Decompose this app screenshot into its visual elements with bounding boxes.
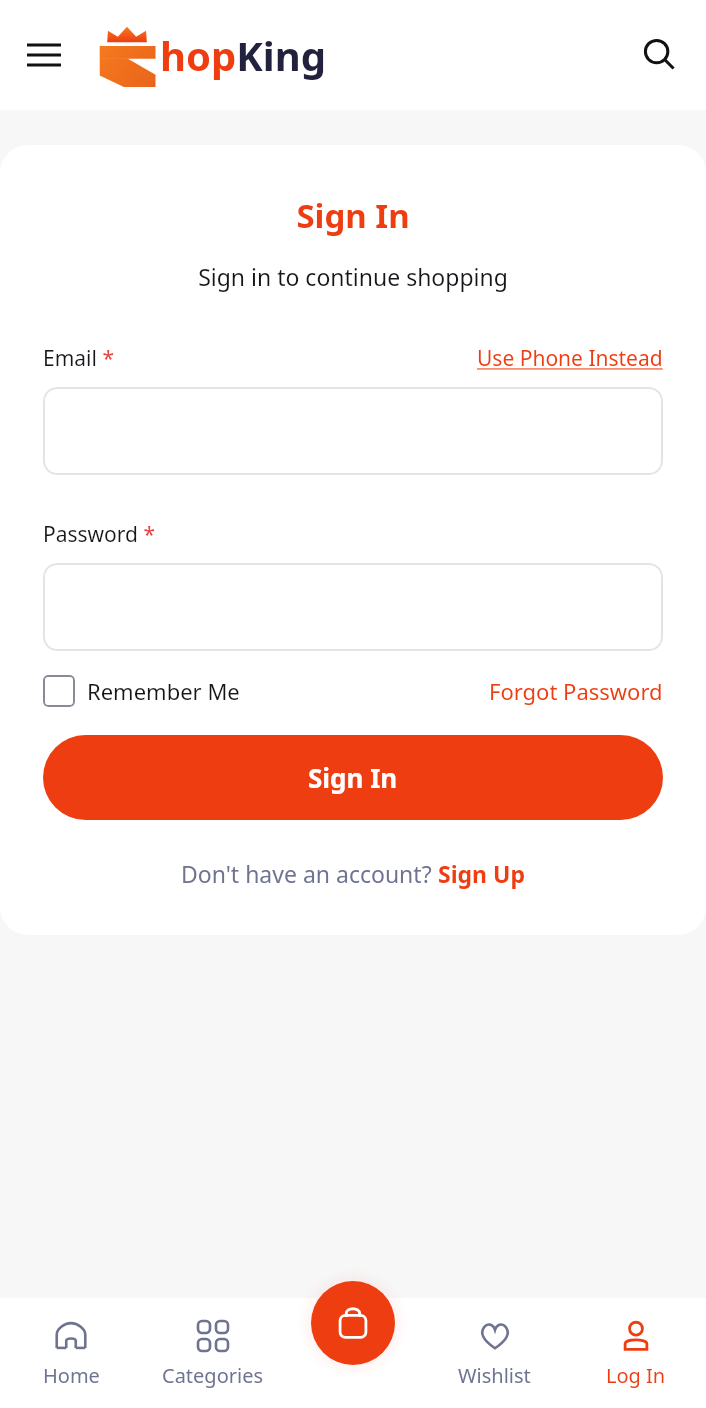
staticText: Password * <box>43 520 156 549</box>
staticText: Forgot Password <box>489 676 663 706</box>
staticText: Sign Up <box>438 858 525 889</box>
button[interactable]: Wishlist <box>424 1318 565 1389</box>
button[interactable]: Home <box>0 1318 142 1389</box>
button[interactable] <box>43 563 663 651</box>
button[interactable]: Categories <box>142 1318 283 1389</box>
staticText: Categories <box>162 1362 264 1389</box>
button[interactable]: Sign Up <box>438 858 525 889</box>
button[interactable]: Search <box>630 26 688 84</box>
button[interactable]: Log In <box>565 1318 706 1389</box>
button[interactable]: Menu <box>16 27 72 83</box>
staticText: Email * <box>43 344 114 373</box>
button[interactable]: Use Phone Instead <box>477 344 663 373</box>
staticText: Use Phone Instead <box>477 344 663 373</box>
staticText: Log In <box>606 1362 666 1389</box>
button[interactable]: Sign In <box>43 735 663 820</box>
button[interactable]: Remember Me <box>43 675 240 707</box>
staticText: Remember Me <box>87 676 240 706</box>
staticText: Sign In <box>43 193 663 238</box>
staticText: hopKing <box>160 28 327 82</box>
button[interactable]: Forgot Password <box>489 676 663 706</box>
staticText: Wishlist <box>458 1362 531 1389</box>
staticText: Sign In <box>308 760 398 795</box>
staticText: Home <box>43 1362 100 1389</box>
button[interactable] <box>43 387 663 475</box>
staticText: Sign in to continue shopping <box>43 261 663 292</box>
staticText: Don't have an account? <box>181 858 438 889</box>
button[interactable]: Cart <box>311 1281 395 1365</box>
